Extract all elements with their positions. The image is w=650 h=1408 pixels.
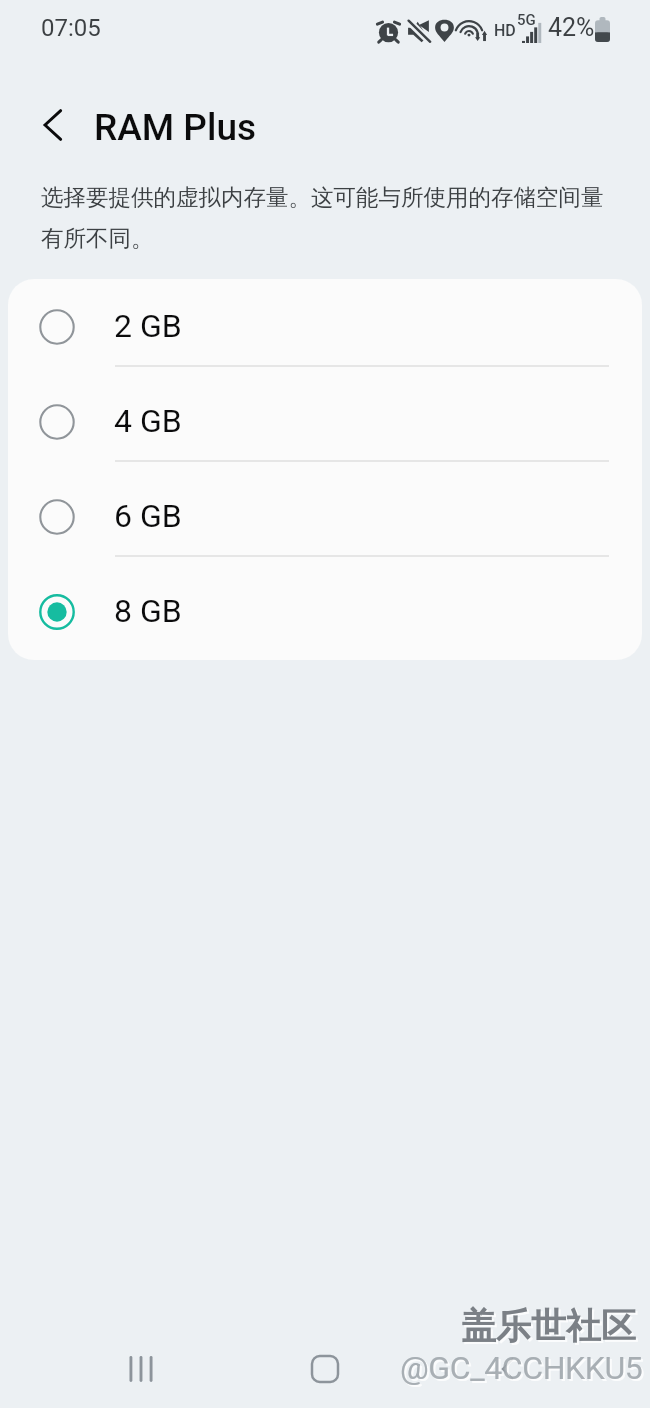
button[interactable]: Home — [293, 1337, 357, 1401]
button[interactable]: 4 GB — [8, 374, 642, 469]
staticText: 盖乐世社区 — [463, 1306, 638, 1350]
staticText: 07:05 — [41, 14, 101, 42]
button[interactable]: Navigate up — [29, 101, 77, 149]
staticText: 盖乐世社区 — [461, 1304, 636, 1348]
staticText: 5G — [517, 11, 536, 29]
staticText: 2 GB — [114, 307, 182, 345]
staticText: @GC_4CCHKKU5 — [402, 1351, 645, 1389]
staticText: 4 GB — [114, 402, 182, 440]
button[interactable]: Back — [476, 1337, 540, 1401]
staticText: RAM Plus — [94, 106, 257, 149]
button[interactable]: 2 GB — [8, 279, 642, 374]
staticText: 6 GB — [114, 497, 182, 535]
staticText: HD — [494, 21, 516, 40]
staticText: 42% — [548, 13, 595, 42]
staticText: 8 GB — [114, 592, 182, 630]
button[interactable]: Recent apps — [109, 1337, 173, 1401]
staticText: @GC_4CCHKKU5 — [400, 1349, 643, 1387]
button[interactable]: 8 GB — [8, 564, 642, 659]
staticText: 选择要提供的虚拟内存量。这可能与所使用的存储空间量有所不同。 — [41, 183, 622, 253]
button[interactable]: 6 GB — [8, 469, 642, 564]
